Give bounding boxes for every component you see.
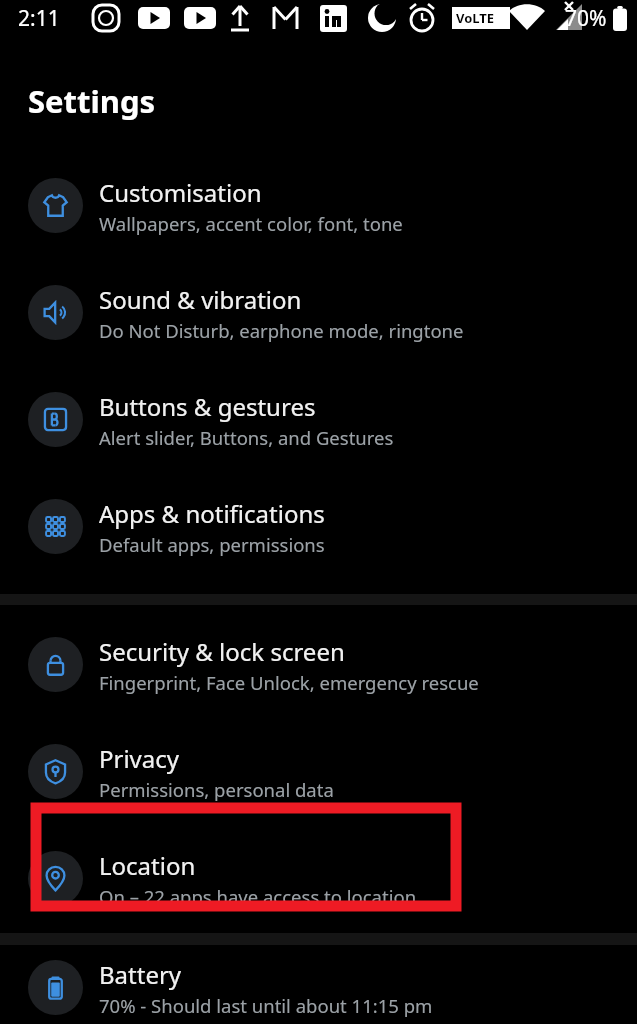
staticText: 70% (565, 4, 607, 33)
staticText: Security & lock screen (99, 635, 345, 668)
staticText: VoLTE (456, 9, 495, 27)
staticText: Permissions, personal data (99, 777, 334, 802)
staticText: 2:11 (18, 4, 60, 33)
button[interactable]: Customisation (0, 152, 637, 259)
button[interactable]: Security and lock screen (0, 611, 637, 718)
button[interactable]: Apps and notifications (0, 473, 637, 580)
staticText: Location (99, 849, 196, 882)
staticText: Default apps, permissions (99, 532, 325, 557)
staticText: Fingerprint, Face Unlock, emergency resc… (99, 670, 479, 695)
button[interactable]: Buttons and gestures (0, 366, 637, 473)
button[interactable]: Privacy (0, 718, 637, 825)
staticText: Wallpapers, accent color, font, tone (99, 211, 403, 236)
staticText: Battery (99, 958, 182, 991)
staticText: Privacy (99, 742, 180, 775)
staticText: 70% - Should last until about 11:15 pm (99, 993, 433, 1018)
staticText: Alert slider, Buttons, and Gestures (99, 425, 394, 450)
button[interactable]: Battery (0, 951, 637, 1024)
button[interactable]: Location (0, 825, 637, 932)
staticText: Customisation (99, 176, 262, 209)
staticText: Apps & notifications (99, 497, 325, 530)
staticText: Do Not Disturb, earphone mode, ringtone (99, 318, 464, 343)
staticText: Sound & vibration (99, 283, 302, 316)
button[interactable]: Sound and vibration (0, 259, 637, 366)
staticText: On – 22 apps have access to location (99, 884, 417, 909)
staticText: Buttons & gestures (99, 390, 316, 423)
staticText: Settings (28, 80, 156, 122)
